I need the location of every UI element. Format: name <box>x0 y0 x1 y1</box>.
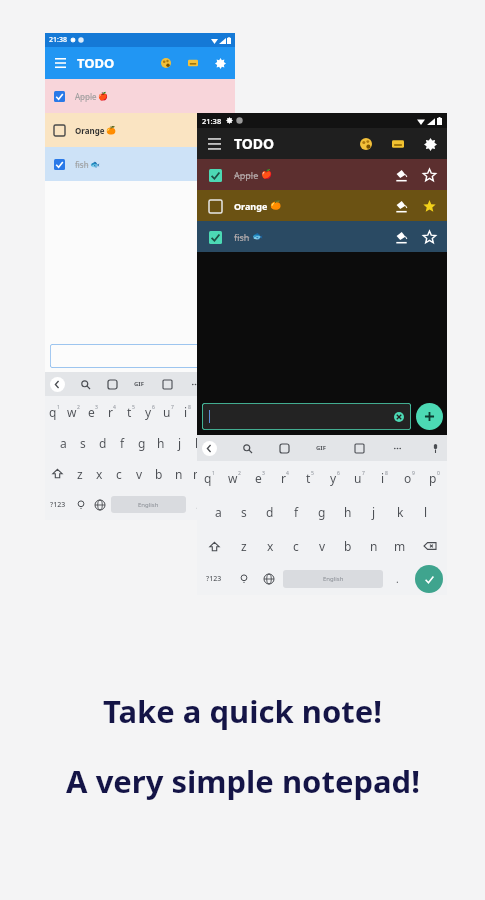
button[interactable]: h <box>335 495 361 529</box>
button[interactable]: m <box>189 458 209 489</box>
button[interactable]: Shift <box>197 529 231 563</box>
button[interactable]: u <box>159 396 178 427</box>
button[interactable]: Clear <box>394 412 404 422</box>
button[interactable]: t <box>297 461 322 495</box>
button[interactable]: Emoji <box>71 489 90 520</box>
button[interactable]: j <box>170 427 189 458</box>
button[interactable]: v <box>309 529 335 563</box>
button[interactable]: q <box>197 461 222 495</box>
button[interactable]: Toggle fish <box>45 147 235 181</box>
button[interactable]: u <box>347 461 372 495</box>
button[interactable]: Sticker <box>277 441 291 455</box>
button[interactable]: k <box>387 495 413 529</box>
button[interactable]: Color <box>392 197 410 215</box>
button[interactable]: y <box>322 461 347 495</box>
button[interactable]: More <box>188 377 202 391</box>
button[interactable]: f <box>283 495 309 529</box>
button[interactable]: d <box>93 427 113 458</box>
button[interactable]: Language <box>90 489 109 520</box>
button[interactable]: English <box>283 570 383 588</box>
button[interactable]: j <box>361 495 387 529</box>
button[interactable]: Language <box>256 563 281 595</box>
button[interactable]: Menu <box>205 135 223 153</box>
button[interactable]: Search <box>78 377 92 391</box>
button[interactable]: Backspace <box>413 529 447 563</box>
button[interactable]: z <box>70 458 89 489</box>
button[interactable]: Menu <box>52 55 68 71</box>
button[interactable]: Shift <box>45 458 70 489</box>
button[interactable]: w <box>64 396 83 427</box>
button[interactable]: i <box>372 461 397 495</box>
button[interactable]: x <box>257 529 283 563</box>
button[interactable]: Emoji <box>231 563 256 595</box>
button[interactable]: Translate <box>160 377 174 391</box>
button[interactable]: f <box>113 427 132 458</box>
button[interactable]: e <box>83 396 102 427</box>
button[interactable]: Toggle fish <box>197 221 447 252</box>
button[interactable]: Enter <box>209 492 234 517</box>
button[interactable]: Toggle Apple <box>53 90 66 103</box>
button[interactable]: Sticker <box>105 377 119 391</box>
button[interactable]: s <box>231 495 257 529</box>
button[interactable]: h <box>151 427 170 458</box>
button[interactable]: Enter <box>415 565 443 593</box>
button[interactable]: y <box>140 396 159 427</box>
button[interactable]: r <box>272 461 297 495</box>
button[interactable]: Star <box>420 228 438 246</box>
button[interactable]: o <box>397 461 422 495</box>
button[interactable]: English <box>111 496 186 513</box>
button[interactable]: m <box>387 529 413 563</box>
button[interactable]: Back <box>50 377 65 392</box>
button[interactable]: s <box>73 427 93 458</box>
button[interactable]: a <box>53 427 73 458</box>
button[interactable]: ?123 <box>45 489 71 520</box>
button[interactable]: ?123 <box>197 563 231 595</box>
button[interactable]: Toggle Apple <box>45 79 235 113</box>
button[interactable]: Toggle Orange <box>197 190 447 221</box>
button[interactable]: Toggle fish <box>207 229 223 245</box>
button[interactable]: v <box>129 458 149 489</box>
button[interactable]: n <box>169 458 189 489</box>
button[interactable]: Ads <box>185 55 201 71</box>
button[interactable]: n <box>361 529 387 563</box>
button[interactable]: g <box>132 427 151 458</box>
button[interactable]: Settings <box>212 55 228 71</box>
button[interactable]: Toggle fish <box>53 158 66 171</box>
button[interactable]: GIF <box>132 378 146 390</box>
button[interactable]: Settings <box>421 135 439 153</box>
button[interactable]: c <box>283 529 309 563</box>
button[interactable]: e <box>247 461 272 495</box>
button[interactable]: d <box>257 495 283 529</box>
button[interactable]: Toggle Orange <box>207 198 223 214</box>
button[interactable]: g <box>309 495 335 529</box>
button[interactable]: Voice <box>428 441 442 455</box>
button[interactable]: Color <box>392 166 410 184</box>
button[interactable]: Add note <box>416 403 443 430</box>
button[interactable]: Toggle Apple <box>207 167 223 183</box>
button[interactable] <box>50 344 230 368</box>
button[interactable]: More <box>390 441 404 455</box>
button[interactable]: i <box>178 396 197 427</box>
button[interactable]: w <box>222 461 247 495</box>
button[interactable]: Toggle Orange <box>53 124 66 137</box>
button[interactable]: p <box>422 461 447 495</box>
button[interactable]: q <box>45 396 64 427</box>
button[interactable]: Search <box>240 441 254 455</box>
button[interactable]: Clear <box>202 403 411 430</box>
button[interactable]: Ads <box>389 135 407 153</box>
button[interactable]: Back <box>202 441 217 456</box>
button[interactable]: r <box>102 396 121 427</box>
button[interactable]: Theme <box>357 135 375 153</box>
button[interactable]: x <box>89 458 109 489</box>
button[interactable]: b <box>335 529 361 563</box>
button[interactable]: z <box>231 529 257 563</box>
button[interactable]: a <box>205 495 231 529</box>
button[interactable]: b <box>149 458 169 489</box>
button[interactable]: Star <box>420 166 438 184</box>
button[interactable]: t <box>121 396 140 427</box>
button[interactable]: o <box>197 396 216 427</box>
button[interactable]: Star <box>420 197 438 215</box>
button[interactable]: k <box>189 427 208 458</box>
